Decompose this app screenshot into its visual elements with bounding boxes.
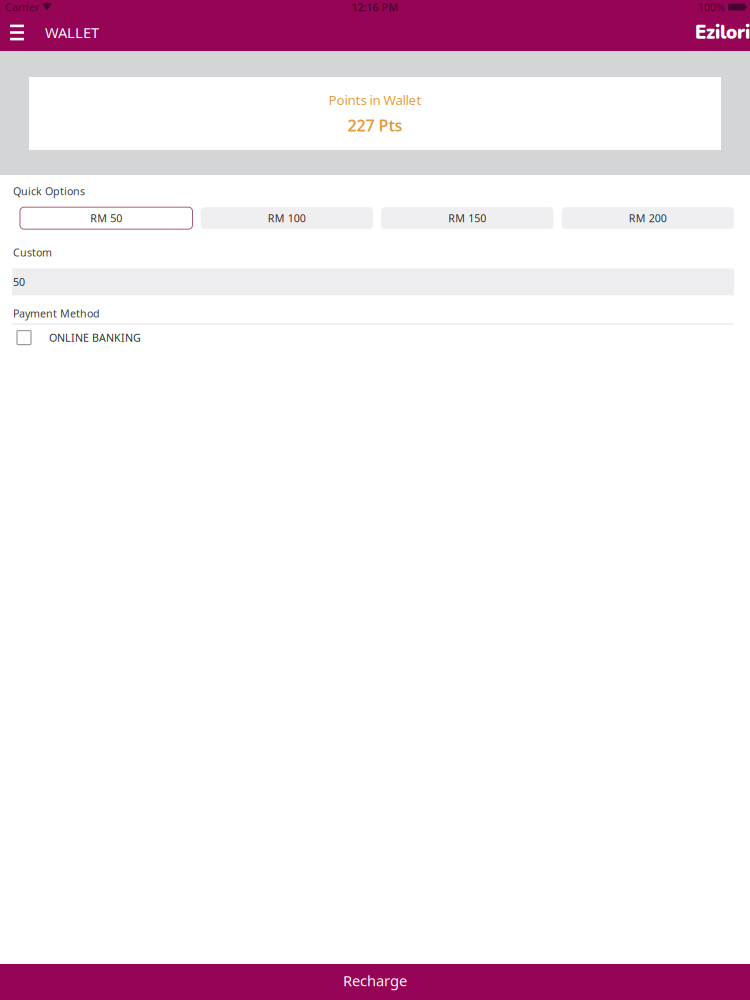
staticText: ONLINE BANKING xyxy=(49,330,141,345)
staticText: RM 200 xyxy=(629,211,667,225)
staticText: Custom xyxy=(13,245,52,259)
staticText: RM 150 xyxy=(448,211,486,225)
staticText: WALLET xyxy=(45,23,99,42)
button[interactable]: Recharge xyxy=(0,964,750,1000)
staticText: Ezilori xyxy=(695,20,750,45)
staticText: 50 xyxy=(13,275,25,289)
staticText: Points in Wallet xyxy=(328,91,421,109)
button[interactable]: RM 200 xyxy=(561,207,734,229)
button[interactable]: Open menu xyxy=(3,14,31,51)
staticText: Carrier xyxy=(5,0,39,14)
staticText: Payment Method xyxy=(13,306,100,320)
staticText: RM 100 xyxy=(268,211,306,225)
button[interactable]: RM 100 xyxy=(200,207,373,229)
staticText: RM 50 xyxy=(90,211,122,225)
staticText: 100% xyxy=(698,0,725,14)
button[interactable]: ONLINE BANKING xyxy=(12,324,734,351)
staticText: Recharge xyxy=(343,971,407,990)
button[interactable]: RM 150 xyxy=(381,207,553,229)
staticText: Quick Options xyxy=(13,184,85,198)
staticText: 12:16 PM xyxy=(351,0,398,14)
button[interactable]: RM 50 xyxy=(20,207,192,229)
staticText: 227 Pts xyxy=(347,115,402,136)
